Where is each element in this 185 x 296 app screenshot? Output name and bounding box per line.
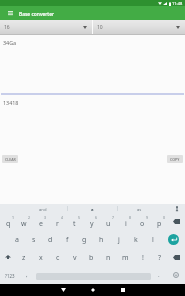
button[interactable]: ? [151, 248, 168, 266]
button[interactable]: d [42, 230, 59, 248]
staticText: 8 [129, 215, 132, 220]
button[interactable]: and [21, 204, 65, 212]
button[interactable]: t [66, 212, 83, 230]
button[interactable]: k [127, 230, 144, 248]
staticText: ? [158, 253, 162, 263]
button[interactable]: ?123 [0, 266, 19, 284]
staticText: 2 [28, 215, 31, 220]
staticText: 16 [4, 24, 10, 31]
button[interactable]: h [93, 230, 110, 248]
button[interactable]: s [25, 230, 42, 248]
staticText: s [32, 235, 36, 245]
staticText: 1 [12, 215, 15, 220]
staticText: t [73, 219, 76, 229]
staticText: p [157, 219, 162, 229]
button[interactable]: Navigation menu [3, 6, 17, 20]
button[interactable]: r [49, 212, 66, 230]
button[interactable]: , [19, 266, 35, 284]
button[interactable]: Home [85, 284, 101, 296]
staticText: b [89, 253, 94, 263]
button[interactable]: u [100, 212, 117, 230]
staticText: i [125, 219, 127, 229]
button[interactable]: 10 [93, 20, 185, 35]
button[interactable]: 16 [0, 20, 92, 35]
staticText: 6 [95, 215, 98, 220]
button[interactable]: Backspace [168, 212, 185, 230]
staticText: and [39, 207, 47, 213]
staticText: y [90, 219, 94, 229]
button[interactable]: ! [134, 248, 151, 266]
button[interactable]: Enter [161, 230, 185, 248]
button[interactable]: j [110, 230, 127, 248]
staticText: 13418 [3, 99, 19, 106]
staticText: ?123 [5, 273, 15, 279]
staticText: as [137, 207, 142, 213]
staticText: COPY [170, 157, 180, 162]
staticText: j [118, 235, 120, 245]
button[interactable]: Recent apps [115, 284, 131, 296]
staticText: d [48, 235, 53, 245]
staticText: 7 [112, 215, 115, 220]
staticText: g [82, 235, 87, 245]
button[interactable]: q [0, 212, 16, 230]
button[interactable]: v [66, 248, 83, 266]
button[interactable]: x [32, 248, 49, 266]
button[interactable]: i [117, 212, 134, 230]
staticText: a [15, 235, 19, 245]
staticText: e [39, 219, 43, 229]
staticText: n [106, 253, 111, 263]
button[interactable]: g [76, 230, 93, 248]
staticText: h [99, 235, 104, 245]
button[interactable]: m [117, 248, 134, 266]
staticText: k [134, 235, 138, 245]
staticText: 3 [44, 215, 47, 220]
staticText: v [73, 253, 77, 263]
staticText: m [122, 253, 129, 263]
staticText: 34Ga [3, 39, 17, 46]
button[interactable]: b [83, 248, 100, 266]
button[interactable]: o [134, 212, 151, 230]
staticText: Base converter [19, 11, 55, 18]
button[interactable]: f [59, 230, 76, 248]
button[interactable]: p [151, 212, 168, 230]
staticText: . [158, 271, 160, 279]
staticText: l [152, 235, 154, 245]
button[interactable]: CLEAR [2, 155, 18, 163]
staticText: 9 [146, 215, 149, 220]
button[interactable]: y [83, 212, 100, 230]
staticText: q [6, 219, 11, 229]
staticText: 5 [78, 215, 81, 220]
button[interactable]: w [16, 212, 32, 230]
button[interactable]: Emoji [167, 266, 185, 284]
button[interactable]: a [70, 204, 114, 212]
button[interactable]: c [49, 248, 66, 266]
staticText: f [66, 235, 69, 245]
button[interactable]: n [100, 248, 117, 266]
button[interactable]: Shift [0, 248, 16, 266]
staticText: r [56, 219, 59, 229]
staticText: z [22, 253, 26, 263]
button[interactable]: e [32, 212, 49, 230]
staticText: ! [142, 253, 144, 263]
button[interactable]: Voice input [170, 204, 184, 212]
staticText: 0 [163, 215, 166, 220]
button[interactable]: l [144, 230, 161, 248]
staticText: 10 [97, 24, 103, 31]
staticText: w [21, 219, 27, 229]
staticText: c [56, 253, 60, 263]
staticText: 4 [61, 215, 64, 220]
button[interactable]: Backspace [168, 248, 185, 266]
button[interactable]: z [16, 248, 32, 266]
staticText: 11:48 [172, 1, 183, 6]
button[interactable]: as [117, 204, 161, 212]
button[interactable]: Back [55, 284, 71, 296]
button[interactable]: a [8, 230, 25, 248]
staticText: x [39, 253, 43, 263]
staticText: a [91, 207, 94, 213]
staticText: o [140, 219, 145, 229]
staticText: CLEAR [5, 157, 16, 162]
button[interactable]: COPY [167, 155, 183, 163]
staticText: u [106, 219, 111, 229]
